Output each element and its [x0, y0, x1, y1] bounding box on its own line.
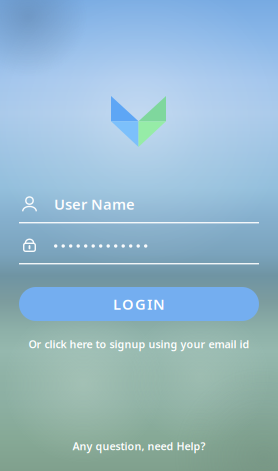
button[interactable]: Any question, need Help?: [0, 437, 278, 455]
button[interactable]: L O G I N: [19, 287, 259, 321]
staticText: Or click here to signup using your email…: [28, 337, 249, 351]
staticText: User Name: [54, 194, 135, 214]
button[interactable]: Or click here to signup using your email…: [0, 335, 278, 353]
staticText: L O G I N: [113, 294, 165, 314]
staticText: Any question, need Help?: [72, 439, 205, 453]
